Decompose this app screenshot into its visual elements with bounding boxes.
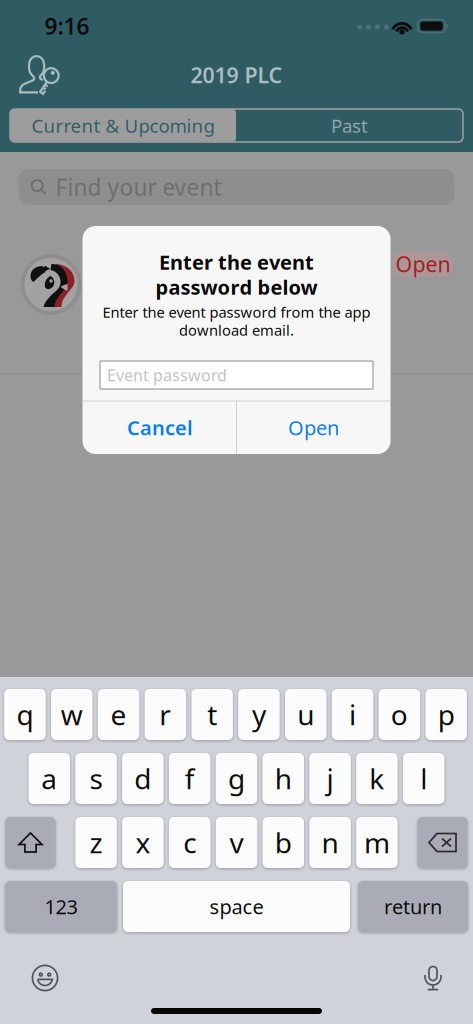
button[interactable]: w xyxy=(51,689,92,740)
staticText: 9:16 xyxy=(44,11,89,41)
staticText: z xyxy=(90,824,103,861)
button[interactable]: j xyxy=(309,753,351,804)
button[interactable]: u xyxy=(285,689,326,740)
staticText: p xyxy=(438,696,455,733)
staticText: return xyxy=(384,893,442,920)
staticText: r xyxy=(159,696,171,733)
button[interactable]: l xyxy=(403,753,444,804)
staticText: a xyxy=(41,760,57,797)
button[interactable]: f xyxy=(169,753,210,804)
button[interactable]: Dictate xyxy=(411,956,455,1000)
staticText: Cancel xyxy=(127,414,193,441)
staticText: h xyxy=(275,760,292,797)
button[interactable]: Emoji keyboard xyxy=(23,956,67,1000)
button[interactable]: Find your event xyxy=(18,169,454,205)
staticText: g xyxy=(228,760,245,797)
staticText: Open xyxy=(288,414,339,441)
staticText: e xyxy=(110,696,126,733)
staticText: space xyxy=(209,893,263,920)
staticText: download email. xyxy=(179,320,294,340)
button[interactable]: q xyxy=(4,689,46,740)
button[interactable]: s xyxy=(75,753,117,804)
staticText: t xyxy=(207,696,217,733)
staticText: Past xyxy=(331,113,368,138)
staticText: k xyxy=(369,760,384,797)
staticText: Enter the event xyxy=(159,249,314,275)
button[interactable]: e xyxy=(98,689,139,740)
button[interactable]: Past xyxy=(236,109,463,142)
button[interactable]: Current & Upcoming xyxy=(10,109,236,142)
staticText: u xyxy=(297,696,314,733)
staticText: s xyxy=(89,760,102,797)
button[interactable]: p xyxy=(425,689,467,740)
staticText: n xyxy=(322,824,339,861)
staticText: Event password xyxy=(107,364,227,386)
button[interactable]: Account login xyxy=(9,45,71,107)
button[interactable]: z xyxy=(75,817,117,868)
staticText: c xyxy=(183,824,196,861)
staticText: x xyxy=(135,824,150,861)
staticText: j xyxy=(326,760,333,797)
button[interactable]: k xyxy=(356,753,398,804)
staticText: Find your event xyxy=(55,172,221,202)
button[interactable]: b xyxy=(262,817,304,868)
staticText: password below xyxy=(155,274,317,300)
staticText: v xyxy=(229,824,243,861)
button[interactable]: Cancel xyxy=(83,401,236,453)
staticText: 123 xyxy=(44,893,77,920)
staticText: Nov 3 - Nov 6, 2019 xyxy=(88,285,248,308)
button[interactable]: n xyxy=(309,817,351,868)
button[interactable]: t xyxy=(191,689,233,740)
button[interactable]: Delete xyxy=(417,817,467,868)
button[interactable]: x xyxy=(122,817,164,868)
button[interactable]: Open xyxy=(237,401,390,453)
staticText: l xyxy=(420,760,427,797)
staticText: o xyxy=(391,696,408,733)
staticText: 2019 PLC xyxy=(190,61,282,89)
button[interactable]: 123 xyxy=(5,881,117,932)
staticText: b xyxy=(275,824,292,861)
button[interactable]: i xyxy=(332,689,373,740)
staticText: y xyxy=(252,696,266,733)
button[interactable]: r xyxy=(145,689,186,740)
button[interactable]: o xyxy=(379,689,420,740)
button[interactable]: y xyxy=(238,689,280,740)
button[interactable]: a xyxy=(28,753,70,804)
staticText: d xyxy=(134,760,151,797)
button[interactable]: h xyxy=(262,753,304,804)
button[interactable]: 2019 PLC xyxy=(0,212,473,332)
staticText: Current & Upcoming xyxy=(31,113,214,138)
staticText: q xyxy=(16,696,33,733)
button[interactable]: m xyxy=(356,817,398,868)
button[interactable]: v xyxy=(216,817,257,868)
staticText: Open xyxy=(395,250,450,278)
button[interactable]: Shift xyxy=(5,817,55,868)
button[interactable]: Event password xyxy=(100,361,373,389)
staticText: Enter the event password from the app xyxy=(102,302,370,322)
button[interactable]: space xyxy=(123,881,350,932)
staticText: 2019 PLC xyxy=(99,257,191,285)
staticText: i xyxy=(349,696,356,733)
button[interactable]: c xyxy=(169,817,210,868)
staticText: f xyxy=(185,760,195,797)
button[interactable]: return xyxy=(358,881,468,932)
button[interactable]: g xyxy=(216,753,257,804)
button[interactable]: d xyxy=(122,753,164,804)
staticText: m xyxy=(364,824,390,861)
staticText: w xyxy=(61,696,83,733)
